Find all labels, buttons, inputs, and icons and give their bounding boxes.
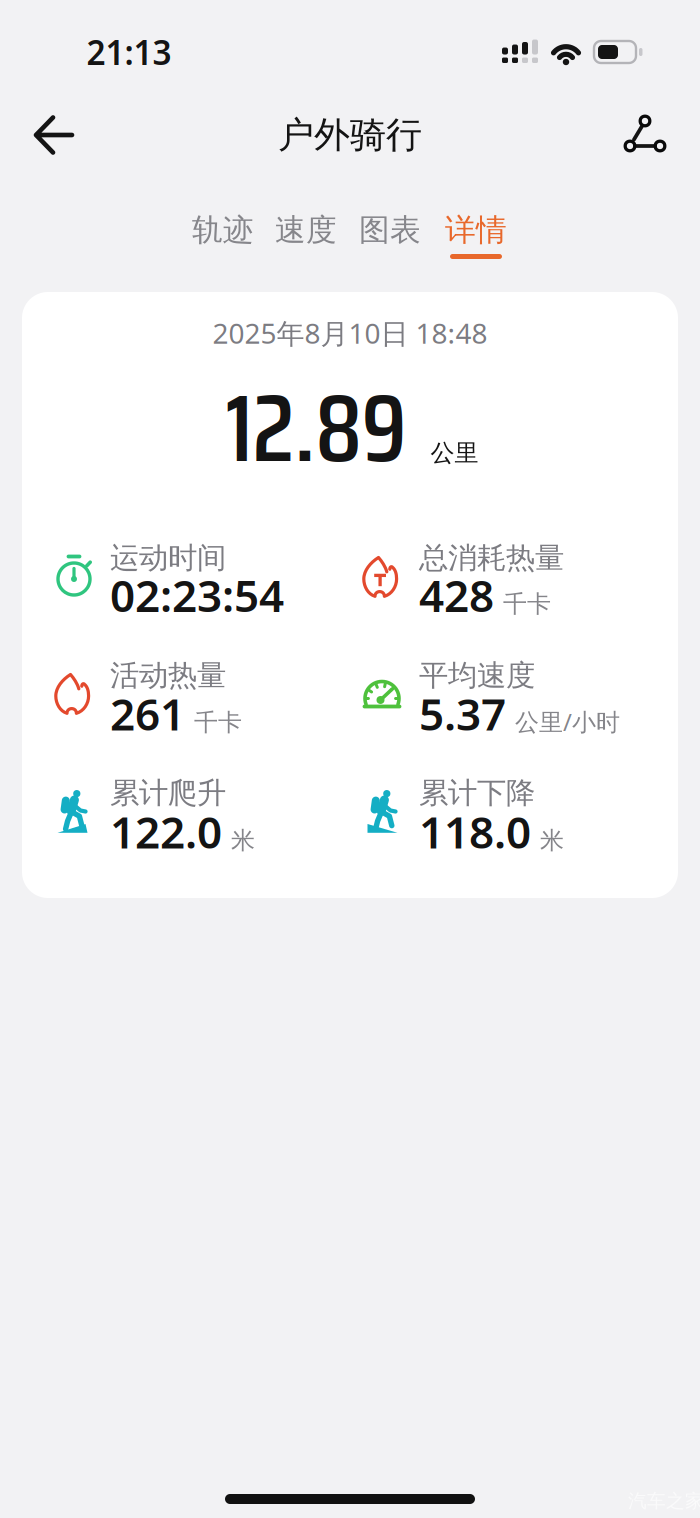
staticText: 运动时间 bbox=[110, 540, 226, 576]
button[interactable]: 速度 bbox=[268, 202, 344, 258]
staticText: 02:23:54 bbox=[110, 566, 284, 624]
staticText: 户外骑行 bbox=[278, 113, 422, 157]
staticText: 122.0 bbox=[110, 802, 222, 861]
staticText: 活动热量 bbox=[110, 657, 226, 693]
staticText: 累计下降 bbox=[419, 775, 535, 811]
staticText: 428 bbox=[419, 566, 494, 624]
staticText: 轨迹 bbox=[192, 211, 254, 249]
staticText: 千卡 bbox=[503, 589, 551, 619]
staticText: 图表 bbox=[359, 211, 421, 249]
button[interactable]: 图表 bbox=[352, 202, 428, 258]
button[interactable]: 轨迹 bbox=[185, 202, 261, 258]
staticText: 米 bbox=[231, 826, 255, 855]
staticText: 12.89 bbox=[225, 353, 406, 502]
staticText: 详情 bbox=[445, 211, 507, 249]
staticText: 平均速度 bbox=[419, 657, 535, 693]
staticText: 公里 bbox=[430, 438, 478, 468]
staticText: 5.37 bbox=[419, 684, 506, 743]
button[interactable]: Back bbox=[32, 114, 76, 156]
staticText: 总消耗热量 bbox=[419, 540, 564, 576]
staticText: 累计爬升 bbox=[110, 775, 226, 811]
staticText: 2025年8月10日 18:48 bbox=[212, 314, 487, 352]
staticText: 21:13 bbox=[86, 30, 171, 74]
staticText: 米 bbox=[540, 826, 564, 855]
staticText: 公里/小时 bbox=[515, 706, 620, 738]
staticText: 千卡 bbox=[194, 708, 242, 737]
button[interactable]: Route bbox=[621, 114, 669, 158]
button[interactable]: 详情 bbox=[438, 202, 514, 258]
staticText: 速度 bbox=[275, 211, 337, 249]
staticText: 261 bbox=[110, 684, 185, 743]
staticText: 118.0 bbox=[419, 802, 531, 861]
